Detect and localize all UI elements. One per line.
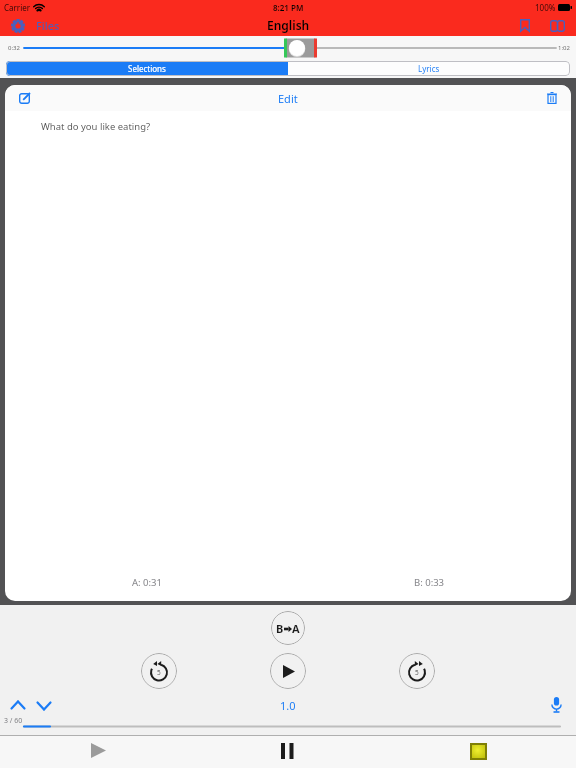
staticText: Edit [278, 91, 298, 106]
button[interactable]: Selections [6, 61, 288, 76]
staticText: Carrier [4, 2, 31, 13]
button[interactable]: Lyrics [288, 61, 570, 76]
staticText: What do you like eating? [41, 120, 151, 133]
button[interactable] [10, 700, 26, 710]
staticText: A [292, 621, 300, 636]
staticText: 5 [157, 668, 161, 677]
button[interactable]: 5 [399, 653, 435, 689]
staticText: B: 0:33 [414, 576, 445, 589]
staticText: 5 [415, 668, 419, 677]
button[interactable] [36, 701, 52, 711]
button[interactable] [270, 653, 306, 689]
staticText: Lyrics [418, 63, 440, 74]
staticText: B [276, 621, 284, 636]
staticText: 100% [535, 2, 556, 13]
button[interactable] [550, 20, 565, 32]
staticText: Files [36, 18, 60, 33]
button[interactable] [91, 743, 106, 758]
button[interactable] [19, 92, 31, 104]
button[interactable] [547, 92, 557, 104]
button[interactable] [550, 697, 563, 713]
button[interactable] [520, 19, 530, 32]
button[interactable]: 5 [141, 653, 177, 689]
button[interactable] [470, 743, 487, 760]
button[interactable]: B [271, 611, 305, 645]
button[interactable]: Files [11, 18, 60, 33]
staticText: 8:21 PM [273, 2, 304, 13]
button[interactable]: 1.0 [280, 698, 296, 713]
staticText: A: 0:31 [132, 576, 162, 589]
staticText: 3 / 60 [4, 716, 23, 726]
staticText: English [267, 17, 310, 33]
staticText: 1:02 [558, 44, 570, 52]
staticText: Selections [128, 63, 166, 74]
staticText: 0:32 [8, 44, 20, 52]
button[interactable]: Edit [278, 91, 298, 106]
button[interactable] [281, 743, 294, 759]
